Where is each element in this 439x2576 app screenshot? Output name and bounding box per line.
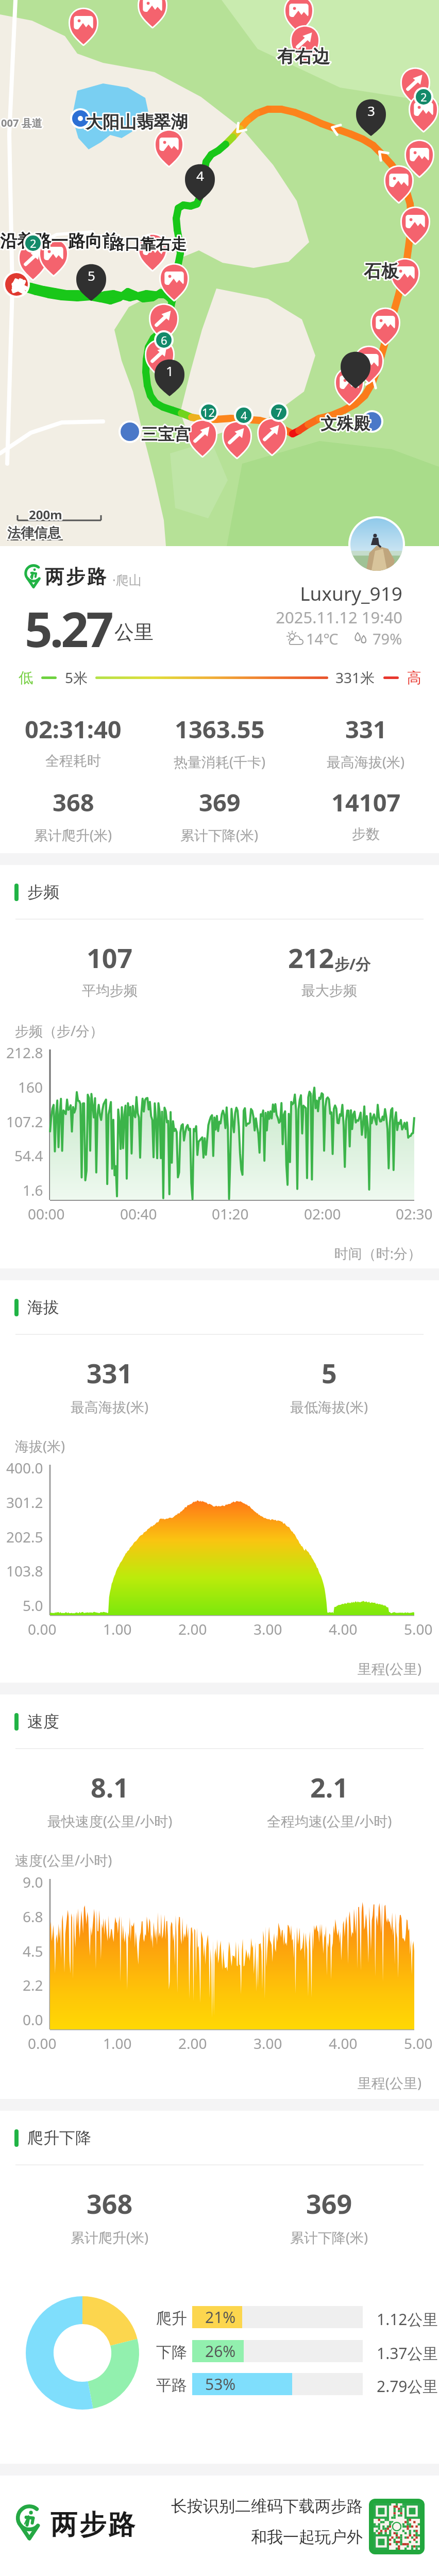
staticText: 最高海拔(米) xyxy=(327,752,405,771)
staticText: 2 xyxy=(420,89,427,105)
staticText: 平路 xyxy=(156,2376,187,2395)
staticText: 和我一起玩户外 xyxy=(0,2527,363,2547)
staticText: 里程(公里) xyxy=(0,2073,421,2092)
staticText: 1.37公里 xyxy=(377,2343,438,2364)
staticText: 里程(公里) xyxy=(0,1659,421,1678)
staticText: 107.2 xyxy=(6,1112,43,1131)
staticText: 全程耗时 xyxy=(45,752,101,770)
staticText: 14107 xyxy=(331,786,401,819)
staticText: 1 xyxy=(166,362,174,380)
staticText: 00:00 xyxy=(28,1204,65,1224)
staticText: 00:40 xyxy=(120,1204,157,1224)
staticText: 21% xyxy=(205,2307,236,2328)
staticText: 5 xyxy=(88,266,95,284)
staticText: 2 xyxy=(30,235,37,251)
staticText: 2.00 xyxy=(178,2033,207,2053)
staticText: 石板 xyxy=(364,260,399,282)
staticText: 5.27 xyxy=(25,596,111,662)
staticText: 1.00 xyxy=(103,2033,132,2053)
staticText: 终 xyxy=(13,278,26,295)
staticText: 14℃ xyxy=(306,629,339,649)
staticText: 79% xyxy=(373,629,402,649)
staticText: 三宝宫 xyxy=(141,424,191,445)
staticText: 热量消耗(千卡) xyxy=(174,752,266,771)
staticText: 沿着路一路向前 xyxy=(0,230,119,252)
staticText: 202.5 xyxy=(6,1527,43,1547)
staticText: 368 xyxy=(87,2185,133,2222)
staticText: 4.00 xyxy=(329,2033,358,2053)
staticText: 8.1 xyxy=(91,1769,129,1805)
staticText: 最大步频 xyxy=(301,982,357,999)
staticText: 终 xyxy=(13,278,26,295)
staticText: 007 县道 xyxy=(1,116,42,130)
staticText: 累计下降(米) xyxy=(180,825,259,844)
staticText: 26% xyxy=(205,2341,236,2362)
staticText: 步频（步/分） xyxy=(15,1021,104,1040)
staticText: 4 xyxy=(241,408,247,423)
staticText: 法律信息 xyxy=(7,524,61,541)
staticText: 全程均速(公里/小时) xyxy=(267,1811,392,1831)
staticText: 大阳山翡翠湖 xyxy=(86,111,188,133)
button[interactable]: User avatar xyxy=(348,516,405,573)
staticText: 02:00 xyxy=(304,1204,341,1224)
staticText: 公里 xyxy=(114,620,154,645)
staticText: 02:31:40 xyxy=(25,713,122,745)
staticText: 1363.55 xyxy=(175,713,265,745)
staticText: 长按识别二维码下载两步路 xyxy=(0,2496,363,2516)
button[interactable]: QR code xyxy=(374,2503,420,2550)
staticText: 4.5 xyxy=(23,1941,43,1961)
staticText: 7 xyxy=(276,404,282,420)
staticText: 007 县道 xyxy=(1,116,42,130)
staticText: 法律信息 xyxy=(7,524,61,541)
staticText: 两步路 xyxy=(44,565,107,589)
staticText: 369 xyxy=(199,786,241,819)
staticText: 步数 xyxy=(352,825,380,843)
staticText: 累计下降(米) xyxy=(290,2228,368,2247)
staticText: 下降 xyxy=(156,2343,187,2362)
staticText: 331米 xyxy=(335,668,375,687)
staticText: 3 xyxy=(367,101,375,120)
staticText: 两步路 xyxy=(49,2508,136,2542)
staticText: 5.00 xyxy=(404,1619,433,1639)
staticText: 海拔(米) xyxy=(15,1436,65,1455)
staticText: 5.0 xyxy=(23,1596,43,1615)
staticText: Luxury_919 xyxy=(0,580,402,606)
staticText: 有右边 xyxy=(277,45,330,67)
staticText: 200m xyxy=(29,506,62,523)
staticText: 4 xyxy=(196,166,204,184)
staticText: 107 xyxy=(87,939,133,976)
staticText: 369 xyxy=(306,2185,352,2222)
staticText: 1.6 xyxy=(23,1180,43,1200)
staticText: 0.00 xyxy=(28,2033,57,2053)
staticText: 6.8 xyxy=(23,1907,43,1926)
staticText: 速度(公里/小时) xyxy=(15,1851,112,1870)
staticText: 有右边 xyxy=(277,45,330,67)
staticText: 3.00 xyxy=(254,2033,282,2053)
staticText: 5米 xyxy=(65,668,88,687)
button[interactable]: Route map xyxy=(0,0,439,546)
staticText: 6 xyxy=(161,332,167,348)
staticText: 368 xyxy=(53,786,94,819)
staticText: 0.00 xyxy=(28,1619,57,1639)
staticText: 三宝宫 xyxy=(141,424,191,445)
staticText: 54.4 xyxy=(14,1146,43,1165)
staticText: 路口靠右走 xyxy=(109,234,187,254)
staticText: 4.00 xyxy=(329,1619,358,1639)
staticText: 0.0 xyxy=(23,2010,43,2029)
staticText: 文殊殿 xyxy=(320,413,370,434)
staticText: 路口靠右走 xyxy=(109,234,187,254)
staticText: 2.2 xyxy=(23,1975,43,1995)
staticText: 1.12公里 xyxy=(377,2309,438,2330)
staticText: 爬升 xyxy=(156,2309,187,2328)
staticText: 速度 xyxy=(27,1711,59,1732)
staticText: 331 xyxy=(87,1354,133,1391)
staticText: 最低海拔(米) xyxy=(290,1397,368,1416)
staticText: 200m xyxy=(29,506,62,523)
staticText: 石板 xyxy=(364,260,399,282)
staticText: 大阳山翡翠湖 xyxy=(86,111,188,133)
staticText: 301.2 xyxy=(6,1493,43,1512)
staticText: 高 xyxy=(407,669,421,687)
staticText: 5.00 xyxy=(404,2033,433,2053)
staticText: 累计爬升(米) xyxy=(34,825,112,844)
staticText: 最快速度(公里/小时) xyxy=(47,1811,173,1831)
